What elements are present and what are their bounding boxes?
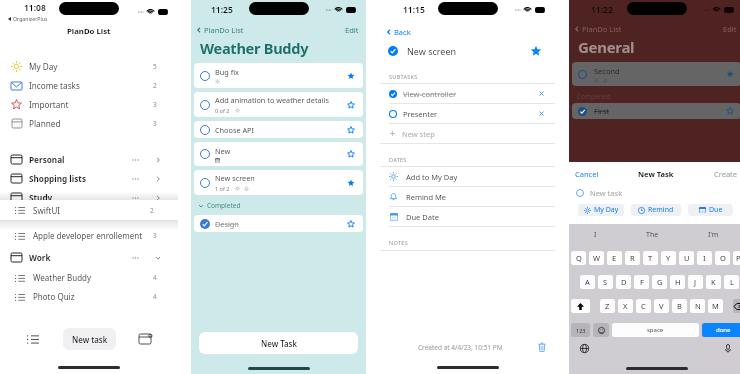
button[interactable]: Presenter xyxy=(389,104,545,123)
button[interactable]: SwiftUI xyxy=(0,200,178,220)
button[interactable]: Add animation to weather details xyxy=(194,92,363,117)
button[interactable]: Weather Buddy xyxy=(0,268,178,287)
staticText: Edit xyxy=(723,24,737,34)
button[interactable]: Important xyxy=(347,72,355,80)
button[interactable]: Remind Me xyxy=(389,187,555,206)
button[interactable]: Shift xyxy=(571,299,590,313)
button[interactable]: Important xyxy=(347,126,355,134)
button[interactable]: Shopping lists xyxy=(0,169,178,188)
button[interactable]: done xyxy=(702,323,740,337)
button[interactable]: Personal xyxy=(0,150,178,169)
button[interactable]: C xyxy=(636,299,651,313)
staticText: Z xyxy=(605,301,610,311)
button[interactable]: Important xyxy=(347,179,355,187)
button[interactable]: New task xyxy=(63,328,116,350)
staticText: J xyxy=(694,277,697,287)
button[interactable]: Z xyxy=(600,299,615,313)
staticText: U xyxy=(684,253,690,263)
button[interactable]: E xyxy=(607,251,622,265)
staticText: My Day xyxy=(594,205,619,215)
button[interactable]: R xyxy=(625,251,640,265)
button[interactable]: View-controller xyxy=(389,84,545,103)
button[interactable]: G xyxy=(652,275,667,289)
button[interactable]: W xyxy=(589,251,604,265)
button[interactable]: I xyxy=(697,251,712,265)
button[interactable]: 123 xyxy=(571,323,590,337)
button[interactable]: Planned xyxy=(0,114,178,133)
staticText: My Day xyxy=(29,61,58,72)
button[interactable]: Remove xyxy=(538,110,545,117)
staticText: S xyxy=(603,277,608,287)
button[interactable]: J xyxy=(688,275,703,289)
button[interactable]: New step xyxy=(389,124,555,143)
button[interactable]: M xyxy=(708,299,723,313)
button[interactable]: Emoji xyxy=(593,323,609,337)
button[interactable]: D xyxy=(616,275,631,289)
button[interactable]: U xyxy=(679,251,694,265)
button[interactable]: T xyxy=(643,251,658,265)
button[interactable]: New xyxy=(194,142,363,166)
staticText: OrganizerPlus xyxy=(13,15,48,22)
button[interactable]: Globe xyxy=(580,344,589,353)
button[interactable]: Second xyxy=(572,62,740,86)
button[interactable]: K xyxy=(706,275,721,289)
button[interactable]: Due xyxy=(688,204,733,216)
button[interactable]: S xyxy=(598,275,613,289)
button[interactable]: Add to My Day xyxy=(389,167,555,186)
button[interactable]: Backspace xyxy=(733,299,740,313)
button[interactable]: Cancel xyxy=(575,169,599,179)
button[interactable]: First xyxy=(572,103,740,119)
button[interactable]: Important xyxy=(347,150,355,158)
button[interactable]: L xyxy=(724,275,739,289)
button[interactable]: My Day xyxy=(0,57,178,76)
button[interactable]: PlanDo List xyxy=(196,25,244,35)
other: Expand xyxy=(155,175,161,183)
button[interactable]: Remove xyxy=(538,90,545,97)
button[interactable]: My Day xyxy=(578,204,624,216)
button[interactable]: New screen xyxy=(388,43,542,59)
button[interactable]: O xyxy=(715,251,730,265)
staticText: D xyxy=(621,277,627,287)
button[interactable]: X xyxy=(618,299,633,313)
staticText: Create xyxy=(714,169,738,179)
button[interactable]: Study xyxy=(0,188,178,207)
button[interactable]: Photo Quiz xyxy=(0,287,178,306)
button[interactable]: Delete xyxy=(538,342,546,352)
staticText: C xyxy=(641,301,646,311)
button[interactable]: New screen xyxy=(194,170,363,195)
button[interactable]: Work xyxy=(0,248,178,267)
button[interactable]: Income tasks xyxy=(0,76,178,95)
button[interactable]: Important xyxy=(347,101,355,109)
button[interactable]: Bug fix xyxy=(194,63,363,88)
button[interactable]: Important xyxy=(0,95,178,114)
button[interactable]: Edit xyxy=(345,25,359,35)
button[interactable]: Completed xyxy=(198,200,366,211)
staticText: New screen xyxy=(215,173,255,183)
button[interactable]: V xyxy=(654,299,669,313)
button[interactable]: H xyxy=(670,275,685,289)
button[interactable]: Apple developer enrollement xyxy=(0,226,178,245)
button[interactable]: A xyxy=(580,275,595,289)
button[interactable]: New list xyxy=(139,334,151,344)
staticText: X xyxy=(623,301,628,311)
staticText: Weather Buddy xyxy=(33,272,92,283)
button[interactable]: Due Date xyxy=(389,207,555,226)
button[interactable]: P xyxy=(733,251,740,265)
button[interactable]: Y xyxy=(661,251,676,265)
button[interactable]: B xyxy=(672,299,687,313)
button[interactable]: Choose API xyxy=(194,121,363,138)
button[interactable]: space xyxy=(612,323,699,337)
button[interactable]: Back xyxy=(386,27,555,37)
button[interactable]: Sort xyxy=(27,334,39,344)
staticText: New screen xyxy=(407,45,457,57)
button[interactable]: Important xyxy=(347,220,355,228)
button[interactable]: Q xyxy=(571,251,586,265)
button[interactable]: Dictate xyxy=(725,344,731,353)
button[interactable]: Remind xyxy=(631,204,681,216)
staticText: H xyxy=(675,277,681,287)
button[interactable]: N xyxy=(690,299,705,313)
button[interactable]: Design xyxy=(194,215,363,232)
button[interactable]: New Task xyxy=(199,332,358,354)
button[interactable]: F xyxy=(634,275,649,289)
button[interactable]: Create xyxy=(714,169,738,179)
